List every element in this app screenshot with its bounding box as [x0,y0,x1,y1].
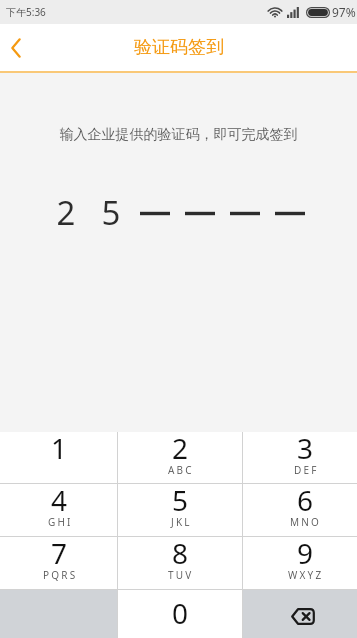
staticText: 输入企业提供的验证码，即可完成签到 [0,126,357,144]
button[interactable]: 1 [0,432,117,483]
button[interactable]: 2 [118,432,242,483]
staticText: 5 [172,481,189,519]
button[interactable]: 7 [0,537,117,589]
staticText: 下午5:36 [6,5,46,19]
staticText: TUV [168,568,194,582]
button[interactable]: 4 [0,484,117,536]
staticText: 8 [172,534,189,572]
button[interactable]: Back [0,24,42,71]
button[interactable]: 9 [243,537,357,589]
staticText: WXYZ [288,568,324,582]
staticText: 0 [172,594,189,632]
staticText: 97% [332,4,356,20]
staticText: DEF [294,463,319,477]
button[interactable]: Backspace [243,590,357,638]
staticText: 6 [297,481,314,519]
staticText: 3 [297,429,314,467]
staticText: 验证码签到 [134,36,224,59]
button[interactable]: 5 [118,484,242,536]
staticText: JKL [171,515,192,529]
staticText: ABC [168,463,194,477]
staticText: GHI [48,515,73,529]
staticText: 2 [45,190,87,230]
button[interactable]: 3 [243,432,357,483]
staticText: 7 [51,534,68,572]
staticText: MNO [290,515,322,529]
button[interactable]: 6 [243,484,357,536]
staticText: 9 [297,534,314,572]
button[interactable]: 0 [118,590,242,638]
button[interactable]: 8 [118,537,242,589]
staticText: 1 [51,429,68,467]
staticText: 4 [51,481,68,519]
staticText: 2 [172,429,189,467]
staticText: 5 [90,190,132,230]
staticText: PQRS [43,568,78,582]
